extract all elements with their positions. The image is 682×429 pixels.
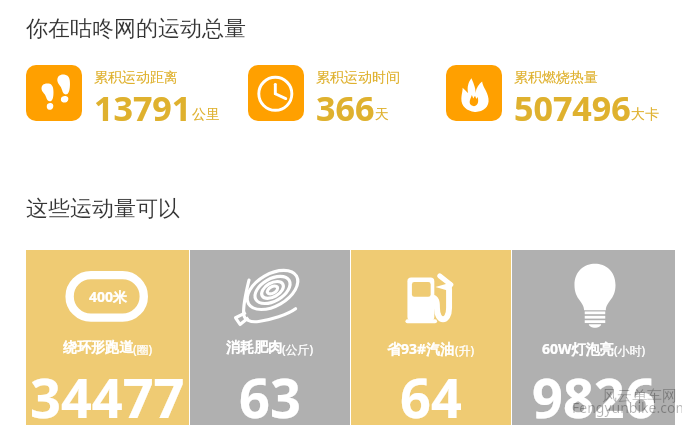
- staticText: 13791: [94, 85, 192, 131]
- staticText: 大卡: [631, 106, 659, 124]
- staticText: 风云单车网: [602, 387, 677, 406]
- button[interactable]: Light bulb hours: [512, 250, 675, 425]
- staticText: 天: [375, 106, 389, 124]
- other: Light bulb hours: [551, 266, 637, 328]
- staticText: 64: [400, 360, 462, 429]
- staticText: Fengyunbike.com: [572, 398, 682, 417]
- button[interactable]: Laps around track: [26, 250, 189, 425]
- staticText: (圈): [133, 341, 153, 357]
- staticText: 34477: [30, 360, 185, 429]
- staticText: 省93#汽油: [387, 339, 455, 358]
- staticText: 60W灯泡亮: [542, 339, 614, 358]
- staticText: 消耗肥肉: [226, 339, 282, 357]
- other: Laps around track: [65, 266, 151, 328]
- staticText: 累积运动时间: [316, 69, 400, 87]
- staticText: 累积运动距离: [94, 69, 178, 87]
- staticText: 绕环形跑道: [63, 339, 133, 357]
- staticText: 366: [316, 85, 375, 131]
- staticText: 这些运动量可以: [26, 195, 180, 223]
- staticText: 累积燃烧热量: [514, 69, 598, 87]
- other: Fuel saved: [388, 266, 474, 328]
- other: Calories burned: [446, 65, 502, 121]
- staticText: 公里: [192, 106, 220, 124]
- staticText: 9826: [532, 360, 656, 429]
- staticText: (公斤): [282, 341, 314, 357]
- other: Accumulated distance: [26, 65, 82, 121]
- button[interactable]: Fat burned: [190, 250, 350, 425]
- button[interactable]: Accumulated time: [248, 65, 400, 129]
- other: Accumulated time: [248, 65, 304, 121]
- staticText: (升): [455, 342, 475, 358]
- other: Fat burned: [227, 266, 313, 328]
- button[interactable]: Calories burned: [446, 65, 659, 129]
- staticText: 507496: [514, 85, 631, 131]
- staticText: 400米: [89, 287, 128, 306]
- button[interactable]: Fuel saved: [351, 250, 511, 425]
- button[interactable]: Accumulated distance: [26, 65, 220, 129]
- staticText: 你在咕咚网的运动总量: [26, 15, 246, 43]
- staticText: (小时): [614, 342, 646, 358]
- staticText: 63: [239, 360, 301, 429]
